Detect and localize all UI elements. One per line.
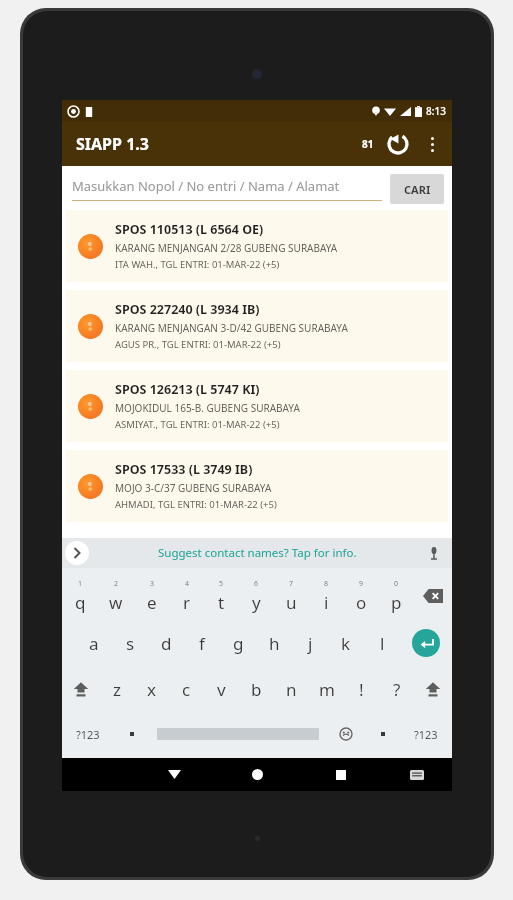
button[interactable]: SPOS 17533 (L 3749 IB)	[66, 450, 448, 522]
button[interactable]: k	[328, 620, 364, 666]
staticText: p	[391, 591, 402, 614]
button[interactable]: ?123	[62, 712, 114, 756]
button[interactable]: Backspace	[414, 572, 452, 620]
button[interactable]: n	[274, 666, 309, 712]
staticText: Masukkan Nopol / No entri / Nama / Alama…	[72, 177, 340, 195]
button[interactable]: SPOS 110513 (L 6564 OE)	[66, 210, 448, 282]
staticText: CARI	[404, 182, 431, 197]
button[interactable]: m	[309, 666, 344, 712]
staticText: 8	[324, 579, 329, 589]
staticText: j	[308, 632, 313, 655]
button[interactable]: a	[76, 620, 112, 666]
button[interactable]: Voice input	[424, 543, 444, 563]
button[interactable]: 4	[169, 572, 204, 620]
button[interactable]: 3	[134, 572, 169, 620]
staticText: z	[113, 678, 121, 701]
button[interactable]: d	[148, 620, 184, 666]
button[interactable]: 81	[356, 137, 380, 151]
button[interactable]: Masukkan Nopol / No entri / Nama / Alama…	[72, 177, 382, 201]
button[interactable]: Period	[366, 712, 400, 756]
button[interactable]: Space	[150, 712, 326, 756]
button[interactable]: ?123	[400, 712, 452, 756]
staticText: k	[341, 632, 351, 655]
staticText: y	[252, 591, 261, 614]
staticText: 2	[114, 579, 119, 589]
button[interactable]: 2	[98, 572, 134, 620]
button[interactable]: 8	[309, 572, 344, 620]
button[interactable]: Enter	[400, 620, 452, 666]
staticText: ASMIYAT., TGL ENTRI: 01-MAR-22 (+5)	[115, 418, 280, 431]
staticText: w	[109, 591, 123, 614]
staticText: q	[75, 591, 86, 614]
staticText: l	[380, 632, 385, 655]
staticText: ?	[393, 678, 401, 701]
staticText: i	[324, 591, 329, 614]
button[interactable]: s	[112, 620, 148, 666]
staticText: m	[319, 678, 335, 701]
staticText: o	[356, 591, 367, 614]
button[interactable]: Switch keyboard	[382, 758, 452, 791]
staticText: e	[147, 591, 157, 614]
button[interactable]: 1	[62, 572, 98, 620]
staticText: v	[217, 678, 226, 701]
button[interactable]: 5	[204, 572, 239, 620]
staticText: r	[183, 591, 191, 614]
staticText: !	[359, 678, 364, 701]
button[interactable]: SPOS 227240 (L 3934 IB)	[66, 290, 448, 362]
staticText: 5	[219, 579, 224, 589]
button[interactable]: Back	[132, 758, 216, 791]
button[interactable]: j	[292, 620, 328, 666]
button[interactable]: Suggest contact names? Tap for info.	[158, 545, 357, 561]
staticText: n	[286, 678, 297, 701]
button[interactable]: Shift	[62, 666, 100, 712]
button[interactable]: c	[169, 666, 204, 712]
staticText: MOJOKIDUL 165-B. GUBENG SURABAYA	[115, 401, 300, 415]
button[interactable]: v	[204, 666, 239, 712]
staticText: u	[286, 591, 297, 614]
button[interactable]: Recent apps	[299, 758, 382, 791]
staticText: SPOS 126213 (L 5747 KI)	[115, 381, 260, 398]
staticText: MOJO 3-C/37 GUBENG SURABAYA	[115, 481, 272, 495]
button[interactable]: b	[239, 666, 274, 712]
button[interactable]: 0	[379, 572, 414, 620]
staticText: d	[161, 632, 172, 655]
button[interactable]: 7	[274, 572, 309, 620]
button[interactable]: ?	[379, 666, 414, 712]
staticText: 6	[254, 579, 259, 589]
button[interactable]: h	[256, 620, 292, 666]
button[interactable]: Shift	[414, 666, 452, 712]
button[interactable]: 6	[239, 572, 274, 620]
button[interactable]: z	[100, 666, 134, 712]
staticText: a	[89, 632, 99, 655]
button[interactable]: Refresh	[380, 126, 416, 162]
button[interactable]: Comma	[114, 712, 150, 756]
button[interactable]: Expand suggestions	[65, 541, 89, 565]
button[interactable]: CARI	[390, 174, 444, 204]
button[interactable]: 9	[344, 572, 379, 620]
staticText: h	[269, 632, 280, 655]
staticText: t	[218, 591, 225, 614]
staticText: 0	[394, 579, 399, 589]
staticText: SIAPP 1.3	[76, 133, 149, 155]
button[interactable]: SPOS 126213 (L 5747 KI)	[66, 370, 448, 442]
button[interactable]: g	[220, 620, 256, 666]
staticText: 3	[150, 579, 155, 589]
button[interactable]: x	[134, 666, 169, 712]
staticText: c	[182, 678, 191, 701]
button[interactable]: l	[364, 620, 400, 666]
staticText: 1	[78, 579, 83, 589]
staticText: SPOS 227240 (L 3934 IB)	[115, 301, 260, 318]
button[interactable]: Emoji	[326, 712, 366, 756]
staticText: ITA WAH., TGL ENTRI: 01-MAR-22 (+5)	[115, 258, 280, 271]
button[interactable]: More options	[416, 128, 448, 160]
staticText: g	[233, 632, 244, 655]
staticText: f	[199, 632, 205, 655]
staticText: 8:13	[426, 104, 446, 118]
button[interactable]: !	[344, 666, 379, 712]
staticText: b	[251, 678, 262, 701]
staticText: AHMADI, TGL ENTRI: 01-MAR-22 (+5)	[115, 498, 277, 511]
staticText: AGUS PR., TGL ENTRI: 01-MAR-22 (+5)	[115, 338, 281, 351]
button[interactable]: f	[184, 620, 220, 666]
staticText: s	[126, 632, 135, 655]
button[interactable]: Home	[216, 758, 299, 791]
